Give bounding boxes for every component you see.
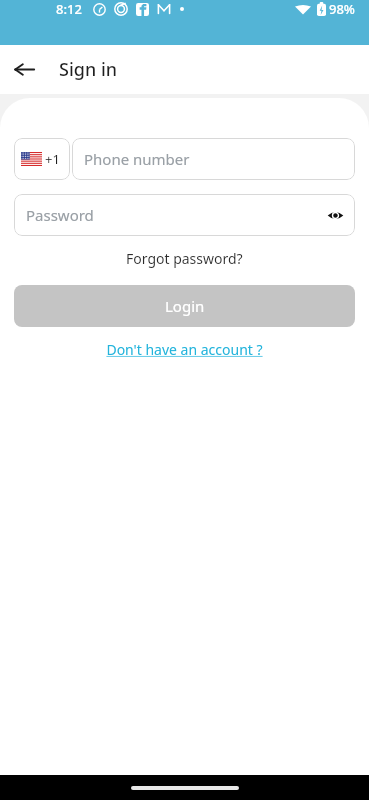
staticText: 98% [329, 0, 355, 18]
button[interactable]: Login [14, 285, 355, 327]
staticText: +1 [45, 150, 60, 168]
button[interactable]: Don't have an account ? [100, 338, 269, 361]
button[interactable]: +1 [14, 138, 70, 180]
button[interactable]: Forgot password? [120, 247, 249, 270]
button[interactable]: Show password [315, 195, 355, 235]
staticText: 8:12 [56, 0, 82, 18]
button[interactable]: Phone number [72, 138, 355, 180]
staticText: Password [26, 205, 94, 225]
button[interactable]: Password [14, 194, 355, 236]
button[interactable]: Back [0, 45, 48, 93]
staticText: Forgot password? [126, 249, 243, 268]
staticText: Phone number [84, 149, 190, 169]
staticText: Sign in [59, 57, 118, 82]
staticText: Don't have an account ? [106, 340, 263, 359]
staticText: Login [165, 296, 205, 316]
